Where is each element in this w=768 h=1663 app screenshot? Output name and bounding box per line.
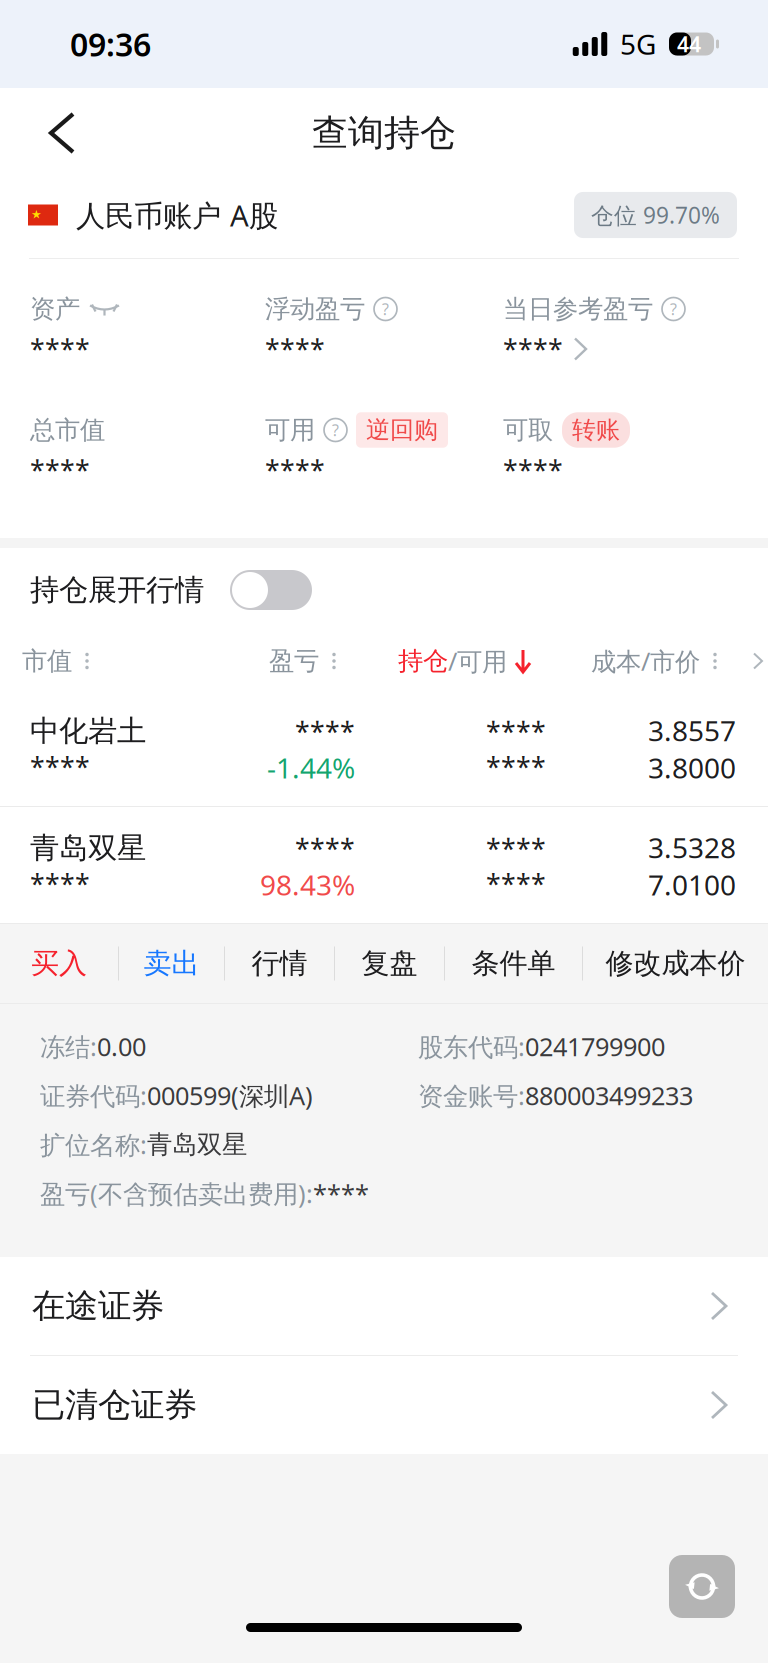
staticText: ****: [486, 749, 546, 784]
staticText: 人民币账户 A股: [76, 195, 278, 234]
staticText: 可取: [503, 414, 553, 445]
staticText: 冻结:: [40, 1030, 97, 1063]
staticText: ****: [486, 866, 546, 901]
staticText: 3.8000: [648, 749, 736, 786]
staticText: 盈亏(不含预估卖出费用):: [40, 1177, 313, 1210]
button[interactable]: 条件单: [445, 924, 582, 1003]
button[interactable]: 青岛双星: [0, 807, 768, 923]
staticText: ****: [295, 831, 355, 866]
staticText: 5G: [620, 25, 656, 63]
staticText: ****: [486, 714, 546, 749]
staticText: ****: [265, 331, 325, 367]
staticText: 行情: [251, 946, 307, 981]
staticText: 可用: [265, 414, 315, 445]
staticText: 880003499233: [525, 1079, 693, 1112]
staticText: 青岛双星: [30, 830, 146, 866]
staticText: ****: [486, 831, 546, 866]
staticText: 仓位 99.70%: [591, 200, 720, 230]
staticText: 盈亏: [269, 645, 319, 676]
staticText: 0.00: [97, 1030, 146, 1063]
staticText: ****: [295, 714, 355, 749]
staticText: 转账: [572, 415, 620, 445]
staticText: 资产: [30, 293, 80, 324]
staticText: 青岛双星: [147, 1129, 247, 1160]
button[interactable]: 买入: [0, 924, 118, 1003]
staticText: 3.5328: [648, 829, 736, 866]
staticText: ****: [265, 452, 325, 488]
staticText: ****: [30, 331, 90, 367]
button[interactable]: 修改成本价: [583, 924, 768, 1003]
staticText: 7.0100: [648, 866, 736, 903]
button[interactable]: 持仓展开行情: [204, 556, 312, 624]
staticText: 总市值: [30, 414, 105, 445]
staticText: 复盘: [361, 946, 417, 981]
staticText: 市值: [22, 645, 72, 676]
staticText: 已清仓证券: [32, 1384, 197, 1425]
staticText: 查询持仓: [312, 111, 456, 155]
staticText: 09:36: [70, 23, 151, 65]
staticText: ?: [382, 298, 389, 320]
staticText: 资金账号:: [418, 1079, 525, 1112]
staticText: 浮动盈亏: [265, 293, 365, 324]
staticText: 中化岩土: [30, 713, 146, 749]
staticText: 3.8557: [648, 712, 736, 749]
staticText: 条件单: [471, 946, 555, 981]
staticText: 卖出: [143, 946, 199, 981]
staticText: 逆回购: [366, 415, 438, 445]
staticText: ?: [670, 298, 677, 320]
button[interactable]: 卖出: [119, 924, 224, 1003]
staticText: 股东代码:: [418, 1030, 525, 1063]
staticText: 成本/市价: [591, 644, 700, 678]
staticText: 当日参考盈亏: [503, 293, 653, 324]
staticText: 买入: [31, 946, 87, 981]
staticText: ****: [30, 452, 90, 488]
button[interactable]: 仓位 99.70%: [574, 192, 737, 238]
staticText: ****: [313, 1177, 369, 1210]
staticText: -1.44%: [267, 749, 355, 786]
staticText: 修改成本价: [605, 946, 745, 981]
staticText: 扩位名称:: [40, 1128, 147, 1161]
staticText: 持仓展开行情: [30, 572, 204, 608]
staticText: 000599(深圳A): [147, 1079, 313, 1112]
button[interactable]: 复盘: [335, 924, 444, 1003]
staticText: 持仓: [398, 645, 448, 676]
button[interactable]: 在途证券: [0, 1257, 768, 1355]
button[interactable]: 行情: [225, 924, 334, 1003]
staticText: 98.43%: [260, 866, 355, 903]
staticText: 44: [677, 30, 701, 58]
button[interactable]: 已清仓证券: [0, 1356, 768, 1454]
staticText: ****: [503, 452, 563, 488]
staticText: 0241799900: [525, 1030, 665, 1063]
staticText: ****: [30, 866, 90, 901]
staticText: ?: [332, 419, 339, 441]
staticText: ★: [31, 207, 42, 221]
staticText: 在途证券: [32, 1285, 164, 1326]
staticText: 证券代码:: [40, 1079, 147, 1112]
staticText: /可用: [448, 644, 507, 678]
button[interactable]: 返回: [20, 91, 104, 175]
button[interactable]: 刷新: [669, 1555, 735, 1618]
staticText: ****: [30, 749, 90, 784]
staticText: ****: [503, 331, 563, 367]
button[interactable]: 中化岩土: [0, 690, 768, 806]
